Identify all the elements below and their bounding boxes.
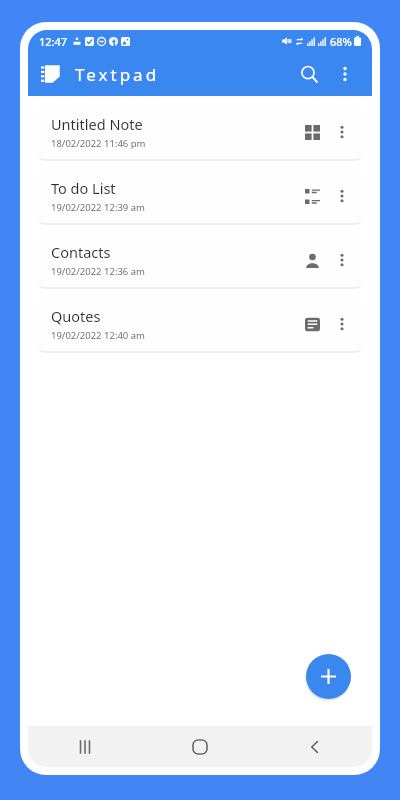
- button[interactable]: Recent apps: [28, 726, 142, 767]
- staticText: 12:47: [39, 34, 68, 49]
- button[interactable]: More options: [328, 57, 362, 91]
- button[interactable]: More options for To do List: [327, 181, 357, 211]
- staticText: Contacts: [51, 242, 111, 262]
- staticText: 19/02/2022 12:40 am: [51, 329, 145, 342]
- button[interactable]: Back: [257, 726, 372, 767]
- staticText: 18/02/2022 11:46 pm: [51, 137, 146, 150]
- staticText: Quotes: [51, 306, 101, 326]
- button[interactable]: Untitled Note: [37, 105, 363, 159]
- button[interactable]: Add note: [306, 654, 351, 699]
- staticText: 19/02/2022 12:39 am: [51, 201, 145, 214]
- button[interactable]: To do List: [37, 169, 363, 223]
- button[interactable]: More options for Quotes: [327, 309, 357, 339]
- staticText: 68%: [330, 34, 352, 49]
- button[interactable]: Contacts: [37, 233, 363, 287]
- staticText: Textpad: [75, 63, 160, 86]
- staticText: 19/02/2022 12:36 am: [51, 265, 145, 278]
- button[interactable]: Home: [142, 726, 257, 767]
- button[interactable]: More options for Untitled Note: [327, 117, 357, 147]
- staticText: To do List: [51, 178, 116, 198]
- button[interactable]: More options for Contacts: [327, 245, 357, 275]
- staticText: Untitled Note: [51, 114, 143, 134]
- button[interactable]: Search: [290, 55, 328, 93]
- button[interactable]: Quotes: [37, 297, 363, 351]
